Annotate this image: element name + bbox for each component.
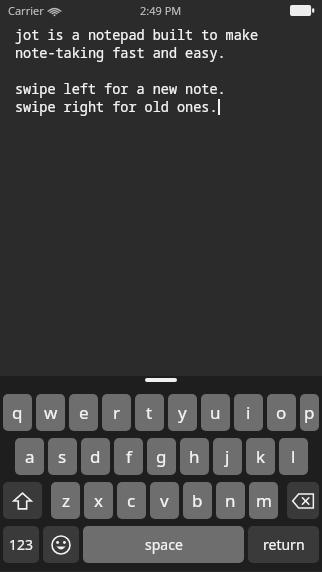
staticText: y	[178, 401, 187, 424]
button[interactable]: v	[150, 482, 179, 519]
button[interactable]: h	[180, 438, 209, 475]
button[interactable]: a	[15, 438, 44, 475]
staticText: f	[126, 445, 132, 468]
staticText: return	[263, 535, 305, 554]
button[interactable]: w	[36, 394, 65, 431]
staticText: note-taking fast and easy.	[15, 44, 226, 62]
button[interactable]: m	[249, 482, 278, 519]
staticText: p	[304, 401, 315, 424]
button[interactable]: b	[183, 482, 212, 519]
button[interactable]: n	[216, 482, 245, 519]
button[interactable]: i	[234, 394, 263, 431]
staticText: l	[291, 445, 296, 468]
button[interactable]: c	[117, 482, 146, 519]
button[interactable]: k	[246, 438, 275, 475]
staticText: space	[145, 535, 183, 554]
button[interactable]: 123	[3, 526, 39, 563]
button[interactable]: y	[168, 394, 197, 431]
staticText: t	[146, 401, 153, 424]
button[interactable]: x	[84, 482, 113, 519]
button[interactable]: o	[267, 394, 296, 431]
staticText: x	[94, 489, 103, 512]
staticText: d	[90, 445, 101, 468]
button[interactable]: p	[300, 394, 319, 431]
staticText: q	[12, 401, 23, 424]
staticText: Carrier	[8, 3, 44, 18]
button[interactable]: f	[114, 438, 143, 475]
staticText: a	[25, 445, 35, 468]
button[interactable]: r	[102, 394, 131, 431]
button[interactable]: z	[51, 482, 80, 519]
staticText: n	[225, 489, 236, 512]
staticText: g	[156, 445, 167, 468]
button[interactable]: q	[3, 394, 32, 431]
staticText: swipe left for a new note.	[15, 80, 226, 98]
staticText: b	[192, 489, 203, 512]
button[interactable]: space	[83, 526, 244, 563]
button[interactable]: g	[147, 438, 176, 475]
staticText: u	[210, 401, 221, 424]
staticText: m	[256, 489, 272, 512]
button[interactable]: s	[48, 438, 77, 475]
button[interactable]: j	[213, 438, 242, 475]
staticText: r	[113, 401, 121, 424]
staticText: 123	[9, 535, 34, 554]
staticText: 2:49 PM	[140, 3, 182, 18]
button[interactable]: Emoji	[43, 526, 79, 563]
button[interactable]: Shift	[3, 482, 42, 519]
staticText: swipe right for old ones.	[15, 98, 218, 116]
button[interactable]: d	[81, 438, 110, 475]
staticText: e	[79, 401, 89, 424]
staticText: j	[225, 445, 230, 468]
staticText: s	[58, 445, 67, 468]
button[interactable]: Delete	[287, 482, 319, 519]
button[interactable]: jot is a notepad built to make	[0, 20, 322, 376]
staticText: w	[44, 401, 58, 424]
button[interactable]	[145, 378, 177, 382]
button[interactable]: return	[248, 526, 319, 563]
staticText: c	[127, 489, 136, 512]
staticText: z	[62, 489, 70, 512]
staticText: o	[276, 401, 287, 424]
staticText: k	[256, 445, 266, 468]
button[interactable]: u	[201, 394, 230, 431]
button[interactable]: t	[135, 394, 164, 431]
staticText: v	[160, 489, 169, 512]
button[interactable]: e	[69, 394, 98, 431]
staticText: i	[246, 401, 251, 424]
button[interactable]: l	[279, 438, 308, 475]
staticText: jot is a notepad built to make	[15, 26, 258, 44]
staticText: h	[189, 445, 200, 468]
